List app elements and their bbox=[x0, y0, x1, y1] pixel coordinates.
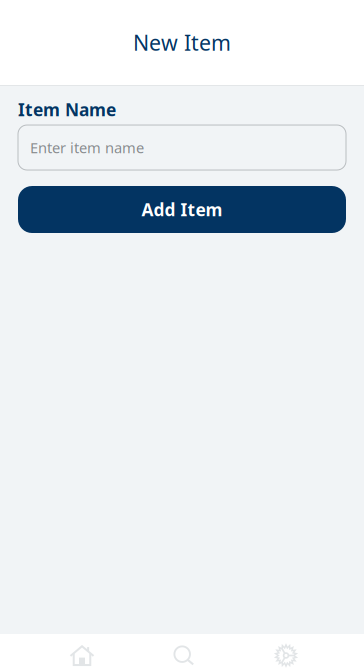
staticText: Add Item bbox=[141, 198, 222, 221]
button[interactable]: Add Item bbox=[18, 186, 346, 233]
staticText: Enter item name bbox=[30, 138, 144, 157]
staticText: Item Name bbox=[18, 98, 116, 121]
button[interactable]: Search bbox=[133, 634, 235, 672]
button[interactable]: Settings bbox=[235, 634, 337, 672]
staticText: New Item bbox=[133, 28, 231, 57]
button[interactable]: Home bbox=[31, 634, 133, 672]
